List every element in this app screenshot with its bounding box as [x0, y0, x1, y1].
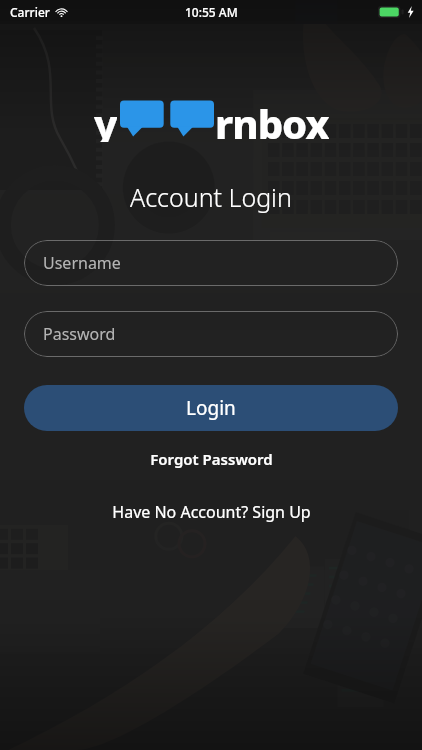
staticText: Account Login [130, 180, 292, 214]
button[interactable]: Have No Account? Sign Up [102, 497, 321, 527]
staticText: Forgot Password [150, 449, 273, 469]
staticText: 10:55 AM [185, 4, 238, 20]
staticText: Username [43, 252, 121, 274]
staticText: Have No Account? Sign Up [112, 501, 311, 523]
staticText: Carrier [10, 4, 50, 20]
staticText: y [94, 96, 117, 142]
button[interactable]: Login [24, 385, 398, 431]
staticText: Login [186, 395, 236, 421]
button[interactable]: Username [24, 240, 398, 286]
staticText: Password [43, 323, 116, 345]
button[interactable]: Forgot Password [140, 445, 283, 473]
button[interactable]: Password [24, 311, 398, 357]
staticText: rnbox [215, 96, 329, 142]
